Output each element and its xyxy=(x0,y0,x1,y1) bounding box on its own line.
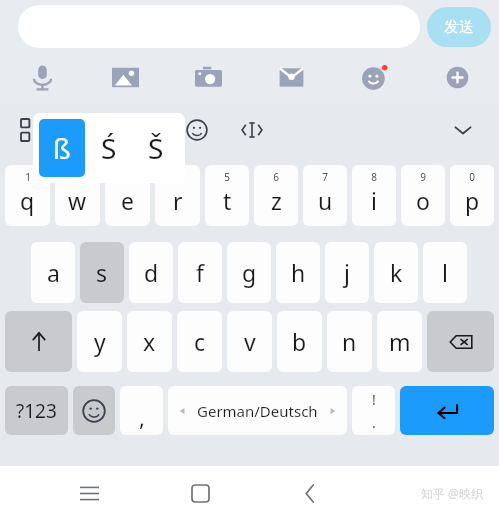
staticText: b xyxy=(292,326,307,357)
button[interactable]: Search xyxy=(124,112,160,148)
staticText: m xyxy=(389,326,411,357)
button[interactable]: s xyxy=(80,242,124,303)
staticText: i xyxy=(371,185,377,216)
staticText: e xyxy=(121,185,134,216)
button[interactable]: Emoji xyxy=(73,386,115,435)
staticText: q xyxy=(20,185,35,216)
button[interactable]: d xyxy=(129,242,173,303)
button[interactable]: x xyxy=(127,311,172,372)
staticText: 6 xyxy=(273,170,279,184)
staticText: n xyxy=(342,326,357,357)
staticText: p xyxy=(465,185,480,216)
staticText: f xyxy=(196,257,204,288)
button[interactable]: Move cursor xyxy=(234,112,270,148)
button[interactable]: Emoji xyxy=(179,112,215,148)
button[interactable]: Back xyxy=(288,471,332,515)
button[interactable]: , xyxy=(120,386,163,435)
staticText: k xyxy=(390,257,403,288)
staticText: 发送 xyxy=(444,18,474,37)
button[interactable]: 7 xyxy=(303,165,347,226)
staticText: ß xyxy=(53,129,71,167)
staticText: o xyxy=(416,185,430,216)
staticText: w xyxy=(68,185,87,216)
button[interactable]: ?123 xyxy=(5,386,68,435)
button[interactable]: Change language xyxy=(69,112,105,148)
staticText: , xyxy=(139,402,145,432)
button[interactable]: German/Deutsch xyxy=(168,386,347,435)
staticText: 0 xyxy=(469,170,475,184)
staticText: l xyxy=(442,257,448,288)
button[interactable]: m xyxy=(377,311,422,372)
staticText: r xyxy=(173,185,183,216)
button[interactable]: 8 xyxy=(352,165,396,226)
button[interactable]: Home xyxy=(178,471,222,515)
button[interactable]: k xyxy=(374,242,418,303)
button[interactable]: v xyxy=(227,311,272,372)
staticText: 9 xyxy=(420,170,426,184)
button[interactable]: Shift xyxy=(5,311,72,372)
button[interactable]: l xyxy=(423,242,467,303)
staticText: u xyxy=(318,185,333,216)
button[interactable]: 0 xyxy=(450,165,494,226)
staticText: 2 xyxy=(75,170,81,184)
button[interactable]: Recent apps xyxy=(67,471,111,515)
staticText: d xyxy=(144,257,159,288)
staticText: Š xyxy=(148,129,164,167)
button[interactable]: Stickers xyxy=(333,53,416,101)
staticText: . xyxy=(372,413,376,432)
staticText: t xyxy=(223,185,232,216)
button[interactable]: Hide keyboard xyxy=(445,112,481,148)
button[interactable]: Š xyxy=(132,119,179,177)
button[interactable]: Gallery xyxy=(84,53,167,101)
staticText: German/Deutsch xyxy=(197,401,318,421)
staticText: 8 xyxy=(371,170,377,184)
button[interactable]: Red packet xyxy=(250,53,333,101)
button[interactable]: y xyxy=(77,311,122,372)
staticText: s xyxy=(96,257,108,288)
button[interactable]: 9 xyxy=(401,165,445,226)
staticText: 5 xyxy=(224,170,230,184)
staticText: ! xyxy=(372,390,376,409)
staticText: ?123 xyxy=(16,398,57,424)
button[interactable]: a xyxy=(31,242,75,303)
staticText: Ś xyxy=(101,129,117,167)
button[interactable]: 1 xyxy=(5,165,50,226)
button[interactable]: Keyboard layouts xyxy=(14,112,50,148)
button[interactable]: ß xyxy=(39,119,85,177)
staticText: 1 xyxy=(25,170,31,184)
staticText: y xyxy=(94,326,106,357)
staticText: a xyxy=(47,257,60,288)
button[interactable]: g xyxy=(227,242,271,303)
button[interactable]: Camera xyxy=(167,53,250,101)
button[interactable] xyxy=(18,5,420,48)
staticText: j xyxy=(344,257,350,288)
staticText: z xyxy=(271,185,282,216)
staticText: x xyxy=(143,326,156,357)
staticText: g xyxy=(242,257,257,288)
button[interactable]: Enter xyxy=(400,386,494,435)
button[interactable]: 2 xyxy=(55,165,100,226)
button[interactable]: h xyxy=(276,242,320,303)
button[interactable]: f xyxy=(178,242,222,303)
staticText: 知乎 @映织 xyxy=(421,485,483,501)
staticText: v xyxy=(244,326,256,357)
button[interactable]: 6 xyxy=(254,165,298,226)
button[interactable]: b xyxy=(277,311,322,372)
button[interactable]: More xyxy=(416,53,499,101)
button[interactable]: 3 xyxy=(105,165,150,226)
staticText: c xyxy=(194,326,206,357)
button[interactable]: 5 xyxy=(205,165,249,226)
button[interactable]: ! xyxy=(352,386,395,435)
button[interactable]: j xyxy=(325,242,369,303)
button[interactable]: c xyxy=(177,311,222,372)
button[interactable]: 4 xyxy=(155,165,200,226)
button[interactable]: Voice message xyxy=(0,53,84,101)
staticText: 7 xyxy=(322,170,328,184)
button[interactable]: Backspace xyxy=(427,311,494,372)
button[interactable]: n xyxy=(327,311,372,372)
staticText: h xyxy=(291,257,306,288)
button[interactable]: 发送 xyxy=(427,7,491,47)
button[interactable]: Ś xyxy=(85,119,132,177)
